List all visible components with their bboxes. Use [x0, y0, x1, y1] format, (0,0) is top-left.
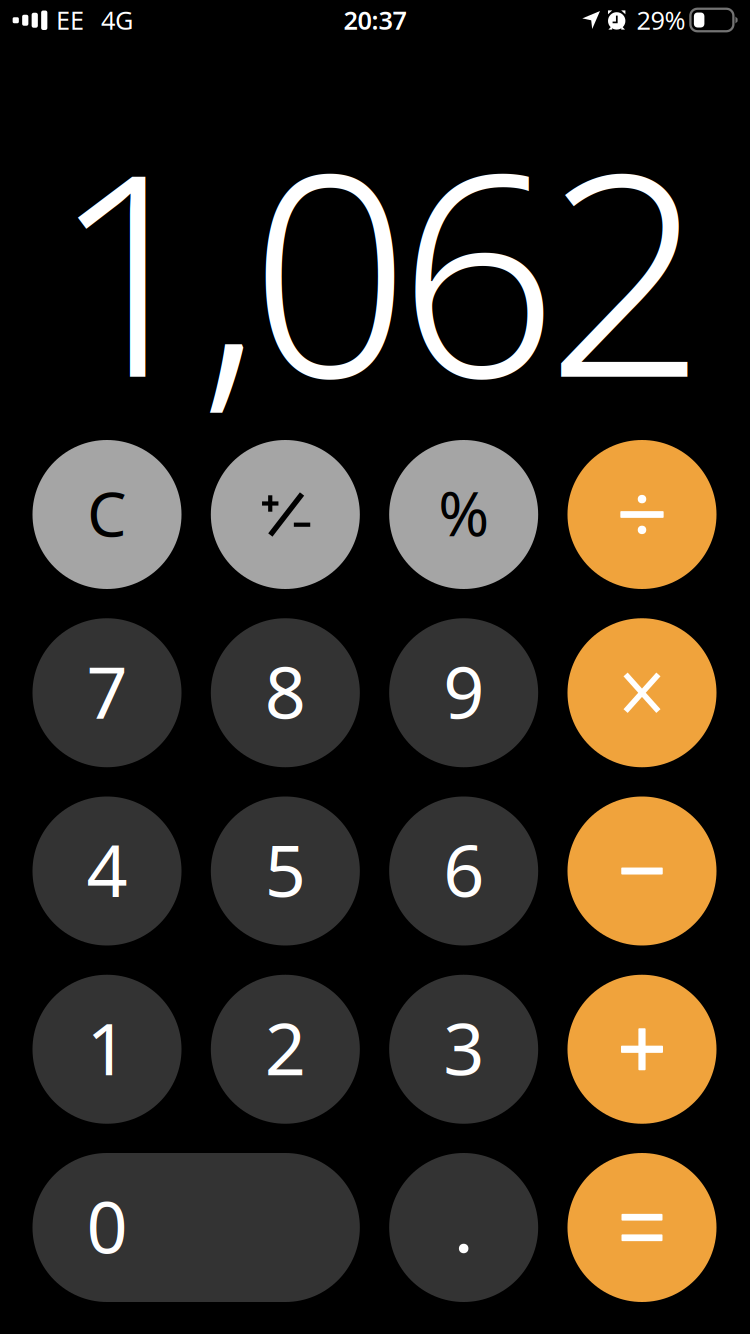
- button[interactable]: 3: [389, 975, 538, 1124]
- button[interactable]: C: [32, 440, 181, 589]
- staticText: 5: [265, 821, 306, 917]
- button[interactable]: 6: [389, 796, 538, 945]
- button[interactable]: Add: [567, 975, 716, 1124]
- staticText: EE: [56, 3, 84, 37]
- staticText: 1: [86, 999, 127, 1095]
- button[interactable]: 4: [32, 796, 181, 945]
- staticText: C: [87, 471, 127, 554]
- button[interactable]: 5: [211, 796, 360, 945]
- button[interactable]: Multiply: [567, 618, 716, 767]
- staticText: 1,062: [51, 82, 706, 454]
- button[interactable]: Equals: [567, 1153, 716, 1302]
- button[interactable]: Decimal point: [389, 1153, 538, 1302]
- staticText: 6: [443, 821, 484, 917]
- staticText: 2: [265, 999, 306, 1095]
- staticText: 3: [443, 999, 484, 1095]
- button[interactable]: 2: [211, 975, 360, 1124]
- staticText: 7: [86, 643, 127, 738]
- button[interactable]: 0: [32, 1153, 360, 1302]
- button[interactable]: 7: [32, 618, 181, 767]
- staticText: %: [438, 472, 489, 553]
- button[interactable]: Plus minus: [211, 440, 360, 589]
- staticText: 0: [86, 1178, 127, 1273]
- staticText: 9: [443, 643, 484, 738]
- staticText: 8: [265, 643, 306, 738]
- button[interactable]: 9: [389, 618, 538, 767]
- staticText: 20:37: [343, 3, 406, 37]
- button[interactable]: 1: [32, 975, 181, 1124]
- button[interactable]: Divide: [567, 440, 716, 589]
- staticText: 29%: [636, 3, 685, 37]
- button[interactable]: %: [389, 440, 538, 589]
- button[interactable]: Subtract: [567, 796, 716, 945]
- staticText: 4: [86, 821, 127, 917]
- staticText: 4G: [101, 3, 133, 37]
- button[interactable]: 8: [211, 618, 360, 767]
